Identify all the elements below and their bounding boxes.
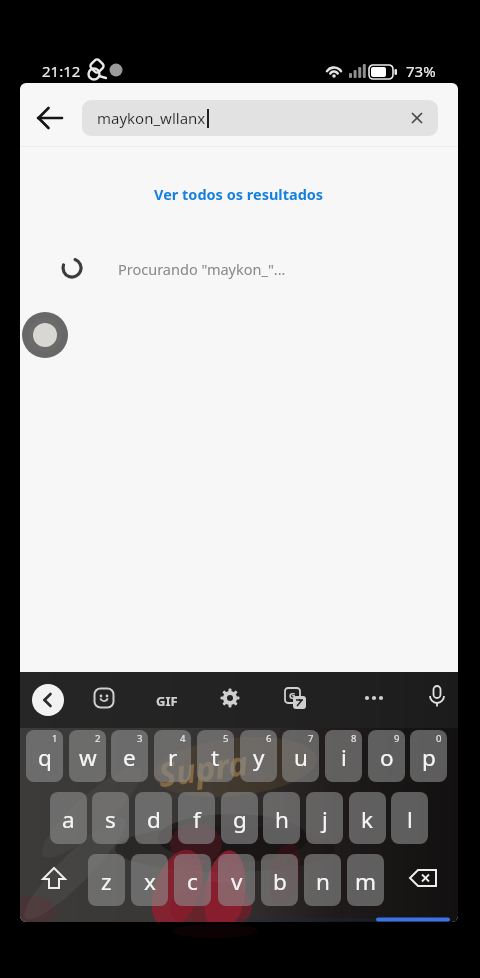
button[interactable]: q <box>26 730 63 782</box>
button[interactable]: p <box>410 730 447 782</box>
staticText: v <box>231 866 243 897</box>
staticText: G <box>289 689 296 701</box>
button[interactable] <box>36 104 64 132</box>
button[interactable]: g <box>221 792 258 844</box>
staticText: u <box>294 742 308 773</box>
staticText: Supra <box>155 740 251 797</box>
button[interactable] <box>93 687 115 709</box>
staticText: a <box>62 804 75 835</box>
button[interactable]: i <box>325 730 362 782</box>
staticText: q <box>38 742 52 773</box>
button[interactable]: a <box>50 792 87 844</box>
staticText: b <box>273 866 287 897</box>
button[interactable]: c <box>174 854 211 906</box>
button[interactable]: u <box>282 730 319 782</box>
staticText: t <box>211 742 220 773</box>
staticText: o <box>380 742 394 773</box>
staticText: k <box>361 804 374 835</box>
staticText: 1 <box>52 732 58 745</box>
button[interactable] <box>406 107 428 129</box>
button[interactable]: Ver todos os resultados <box>154 184 324 204</box>
staticText: l <box>407 804 413 835</box>
button[interactable]: GIF <box>156 692 178 710</box>
button[interactable]: w <box>69 730 106 782</box>
button[interactable]: G <box>284 687 308 711</box>
staticText: 21:12 <box>42 61 81 81</box>
button[interactable] <box>38 864 70 896</box>
button[interactable] <box>219 687 241 709</box>
staticText: 2 <box>95 732 101 745</box>
staticText: y <box>253 742 265 773</box>
button[interactable]: t <box>197 730 234 782</box>
staticText: 4 <box>180 732 186 745</box>
staticText: f <box>193 804 201 835</box>
staticText: d <box>147 804 161 835</box>
button[interactable]: maykon_wllanx <box>82 100 438 136</box>
staticText: x <box>144 866 156 897</box>
staticText: n <box>316 866 330 897</box>
staticText: 6 <box>266 732 272 745</box>
button[interactable]: j <box>306 792 343 844</box>
button[interactable]: o <box>368 730 405 782</box>
staticText: z <box>101 866 112 897</box>
button[interactable] <box>22 312 68 358</box>
staticText: Procurando "maykon_"... <box>118 259 286 279</box>
button[interactable] <box>32 684 64 716</box>
staticText: 73% <box>406 61 436 81</box>
button[interactable] <box>363 687 385 709</box>
button[interactable]: l <box>391 792 428 844</box>
staticText: p <box>422 742 436 773</box>
button[interactable]: e <box>111 730 148 782</box>
staticText: j <box>322 804 328 835</box>
button[interactable]: m <box>347 854 384 906</box>
button[interactable] <box>408 866 442 900</box>
staticText: 7 <box>308 732 314 745</box>
staticText: i <box>341 742 347 773</box>
staticText: 3 <box>137 732 143 745</box>
staticText: w <box>79 742 97 773</box>
button[interactable] <box>426 685 448 707</box>
button[interactable]: x <box>131 854 168 906</box>
button[interactable]: s <box>92 792 129 844</box>
button[interactable]: v <box>218 854 255 906</box>
staticText: r <box>168 742 178 773</box>
button[interactable]: k <box>349 792 386 844</box>
staticText: 9 <box>394 732 400 745</box>
staticText: 8 <box>351 732 357 745</box>
staticText: c <box>187 866 198 897</box>
staticText: e <box>123 742 136 773</box>
button[interactable]: r <box>154 730 191 782</box>
button[interactable]: f <box>178 792 215 844</box>
button[interactable]: d <box>135 792 172 844</box>
button[interactable]: h <box>263 792 300 844</box>
staticText: maykon_wllanx <box>97 108 206 128</box>
staticText: 5 <box>223 732 229 745</box>
staticText: 0 <box>436 732 442 745</box>
button[interactable]: n <box>304 854 341 906</box>
staticText: h <box>275 804 289 835</box>
staticText: s <box>105 804 116 835</box>
staticText: g <box>233 804 247 835</box>
staticText: m <box>355 866 377 897</box>
button[interactable]: b <box>261 854 298 906</box>
button[interactable]: z <box>88 854 125 906</box>
button[interactable]: y <box>240 730 277 782</box>
